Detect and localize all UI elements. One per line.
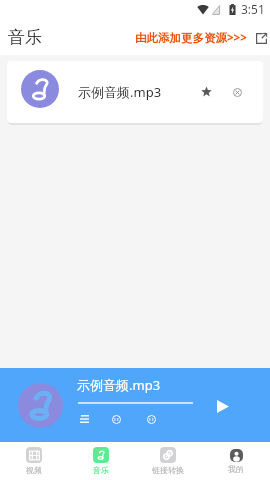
button[interactable]: 视频 [0, 442, 67, 480]
other: Add resource [255, 32, 267, 44]
staticText: 我的 [228, 464, 244, 474]
staticText: 音乐 [8, 27, 42, 48]
staticText: 视频 [26, 465, 42, 475]
button[interactable]: Forward 15 seconds [139, 407, 163, 431]
button[interactable]: 我的 [202, 442, 270, 480]
button[interactable]: Play [210, 393, 236, 419]
staticText: 由此添加更多资源>>> [135, 30, 247, 46]
staticText: 链接转换 [152, 465, 184, 475]
button[interactable]: 示例音频.mp3 [7, 61, 263, 123]
button[interactable]: Favorite [194, 79, 218, 103]
button[interactable]: 链接转换 [134, 442, 202, 480]
button[interactable]: 音乐 [67, 442, 134, 480]
staticText: 3:51 [241, 1, 265, 17]
staticText: 音乐 [93, 465, 109, 475]
staticText: 示例音频.mp3 [77, 376, 161, 394]
button[interactable]: 由此添加更多资源>>> [135, 30, 267, 46]
staticText: 示例音频.mp3 [78, 83, 162, 101]
button[interactable]: Playlist [72, 407, 96, 431]
button[interactable]: Rewind 15 seconds [104, 407, 128, 431]
button[interactable]: Delete [225, 80, 249, 104]
